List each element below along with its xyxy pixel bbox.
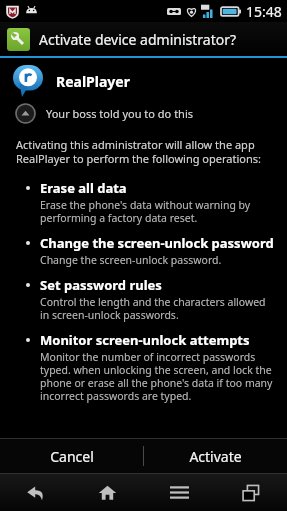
staticText: Monitor screen-unlock attempts [40, 331, 250, 349]
staticText: Activate [189, 447, 242, 466]
staticText: RealPlayer [56, 72, 130, 91]
button[interactable]: Your boss told you to do this [15, 103, 287, 124]
button[interactable]: Cancel [0, 439, 143, 473]
staticText: Activating this administrator will allow… [16, 137, 273, 166]
staticText: Set password rules [40, 276, 162, 294]
button[interactable]: Recent apps [215, 474, 287, 511]
staticText: Activate device administrator? [39, 30, 237, 49]
button[interactable]: Activate [144, 439, 287, 473]
button[interactable]: Back [0, 474, 71, 511]
staticText: Change the screen-unlock password. [40, 253, 222, 267]
staticText: 15:48 [246, 2, 282, 21]
staticText: Control the length and the characters al… [40, 295, 275, 322]
staticText: Cancel [50, 447, 94, 466]
staticText: Change the screen-unlock password [40, 234, 274, 252]
staticText: Erase all data [40, 179, 127, 197]
button[interactable]: Home [71, 474, 143, 511]
button[interactable]: Menu [143, 474, 215, 511]
staticText: Monitor the number of incorrect password… [40, 350, 275, 403]
staticText: Erase the phone's data without warning b… [40, 198, 275, 225]
staticText: Your boss told you to do this [46, 106, 194, 121]
